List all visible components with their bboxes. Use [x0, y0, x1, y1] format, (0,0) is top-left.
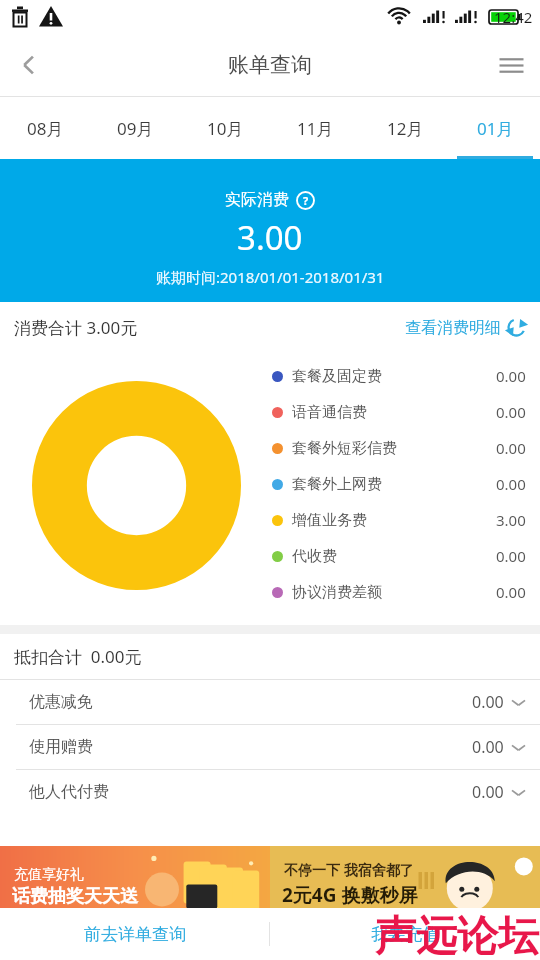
staticText: 08月: [27, 117, 64, 140]
staticText: 语音通信费: [292, 403, 367, 422]
button[interactable]: Help: [296, 191, 315, 210]
staticText: 09月: [117, 117, 154, 140]
button[interactable]: 12月: [360, 97, 450, 159]
staticText: 账期时间:2018/01/01-2018/01/31: [156, 267, 385, 287]
staticText: 12月: [387, 117, 424, 140]
staticText: 0.00: [496, 546, 526, 566]
button[interactable]: 充值享好礼: [0, 846, 270, 908]
staticText: 实际消费: [225, 190, 289, 210]
button[interactable]: 不停一下 我宿舍都了: [270, 846, 540, 908]
button[interactable]: 09月: [90, 97, 180, 159]
staticText: 抵扣合计 0.00元: [14, 645, 142, 668]
button[interactable]: 使用赠费: [0, 725, 540, 769]
staticText: 代收费: [292, 547, 337, 566]
staticText: 12:42: [494, 7, 533, 27]
button[interactable]: 我要充值: [270, 908, 540, 960]
staticText: 查看消费明细: [405, 318, 501, 338]
button[interactable]: Back: [0, 36, 58, 94]
staticText: 0.00: [496, 438, 526, 458]
staticText: 消费合计 3.00元: [14, 316, 138, 339]
staticText: 套餐及固定费: [292, 367, 382, 386]
staticText: 增值业务费: [292, 511, 367, 530]
staticText: 套餐外上网费: [292, 475, 382, 494]
button[interactable]: 10月: [180, 97, 270, 159]
staticText: 套餐外短彩信费: [292, 439, 397, 458]
button[interactable]: 11月: [270, 97, 360, 159]
staticText: 0.00: [496, 366, 526, 386]
button[interactable]: 他人代付费: [0, 770, 540, 814]
staticText: 话费抽奖天天送: [12, 885, 138, 908]
staticText: 11月: [297, 117, 334, 140]
button[interactable]: 前去详单查询: [0, 908, 269, 960]
staticText: 3.00: [237, 215, 303, 260]
staticText: 01月: [477, 117, 514, 140]
staticText: 3.00: [496, 510, 526, 530]
staticText: 0.00: [496, 582, 526, 602]
staticText: 不停一下 我宿舍都了: [284, 860, 414, 879]
staticText: 我要充值: [371, 924, 439, 945]
staticText: 10月: [207, 117, 244, 140]
button[interactable]: 优惠减免: [0, 680, 540, 724]
staticText: 0.00: [496, 474, 526, 494]
staticText: 充值享好礼: [14, 866, 84, 884]
staticText: 0.00: [472, 736, 504, 758]
staticText: 账单查询: [228, 52, 312, 78]
staticText: 使用赠费: [29, 737, 93, 757]
staticText: 0.00: [472, 691, 504, 713]
button[interactable]: Menu: [482, 36, 540, 94]
staticText: 2元4G 换敷秒屏: [282, 882, 418, 908]
staticText: 前去详单查询: [84, 924, 186, 945]
staticText: 协议消费差额: [292, 583, 382, 602]
staticText: 0.00: [496, 402, 526, 422]
staticText: 0.00: [472, 781, 504, 803]
staticText: 声远论坛: [375, 911, 539, 960]
staticText: 优惠减免: [29, 692, 93, 712]
staticText: ?: [303, 193, 309, 208]
staticText: 他人代付费: [29, 782, 109, 802]
button[interactable]: 08月: [0, 97, 90, 159]
button[interactable]: 查看消费明细: [405, 316, 528, 339]
button[interactable]: 01月: [450, 97, 540, 159]
